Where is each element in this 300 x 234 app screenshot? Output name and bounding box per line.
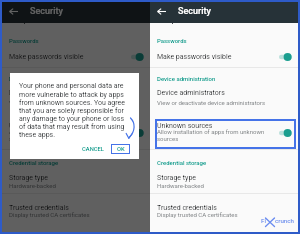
button[interactable]: Navigate up	[154, 4, 169, 19]
staticText: Unknown sources	[157, 122, 213, 130]
staticText: Display trusted CA certificates	[157, 211, 238, 218]
staticText: Credential storage	[9, 159, 59, 166]
button[interactable]: Toggle	[279, 128, 293, 138]
staticText: View or deactivate device administrators	[9, 99, 118, 106]
staticText: Allow installation of apps from unknown …	[9, 128, 117, 142]
staticText: Storage type	[157, 174, 197, 182]
button[interactable]	[150, 119, 298, 147]
staticText: Display trusted CA certificates	[9, 211, 90, 218]
staticText: Device administration	[157, 75, 216, 82]
staticText: Security	[178, 6, 211, 17]
staticText: Security	[30, 6, 63, 17]
button[interactable]	[2, 48, 150, 65]
button[interactable]	[150, 199, 298, 223]
button[interactable]	[2, 85, 150, 109]
button[interactable]	[2, 169, 150, 193]
staticText: Fi	[261, 217, 266, 224]
staticText: Make passwords visible	[9, 53, 84, 61]
staticText: Passwords	[157, 37, 187, 44]
staticText: Your phone and personal data are more vu…	[19, 82, 125, 138]
staticText: Hardware-backed	[157, 182, 204, 189]
staticText: View or deactivate device administrators	[157, 99, 266, 106]
staticText: Device administrators	[157, 89, 225, 97]
staticText: Trusted credentials	[9, 204, 69, 212]
staticText: Hardware-backed	[9, 182, 56, 189]
button[interactable]: CANCEL	[76, 142, 110, 156]
staticText: crunch	[275, 217, 294, 224]
button[interactable]: Toggle	[279, 52, 293, 62]
button[interactable]	[2, 199, 150, 223]
staticText: Device administrators	[9, 89, 77, 97]
staticText: CANCEL	[82, 146, 104, 153]
staticText: OK	[117, 146, 125, 153]
staticText: Allow installation of apps from unknown …	[157, 128, 265, 142]
button[interactable]	[150, 48, 298, 65]
button[interactable]: Toggle	[131, 128, 145, 138]
staticText: Credential storage	[157, 159, 207, 166]
staticText: Passwords	[9, 37, 39, 44]
staticText: Unknown sources	[9, 122, 65, 130]
button[interactable]: Toggle	[131, 52, 145, 62]
staticText: Trusted credentials	[157, 204, 217, 212]
button[interactable]	[150, 169, 298, 193]
staticText: Storage type	[9, 174, 49, 182]
staticText: Make passwords visible	[157, 53, 232, 61]
button[interactable]: OK	[111, 144, 130, 154]
button[interactable]	[150, 85, 298, 109]
button[interactable]	[2, 119, 150, 147]
button[interactable]: Navigate up	[6, 4, 21, 19]
staticText: Device administration	[9, 75, 68, 82]
